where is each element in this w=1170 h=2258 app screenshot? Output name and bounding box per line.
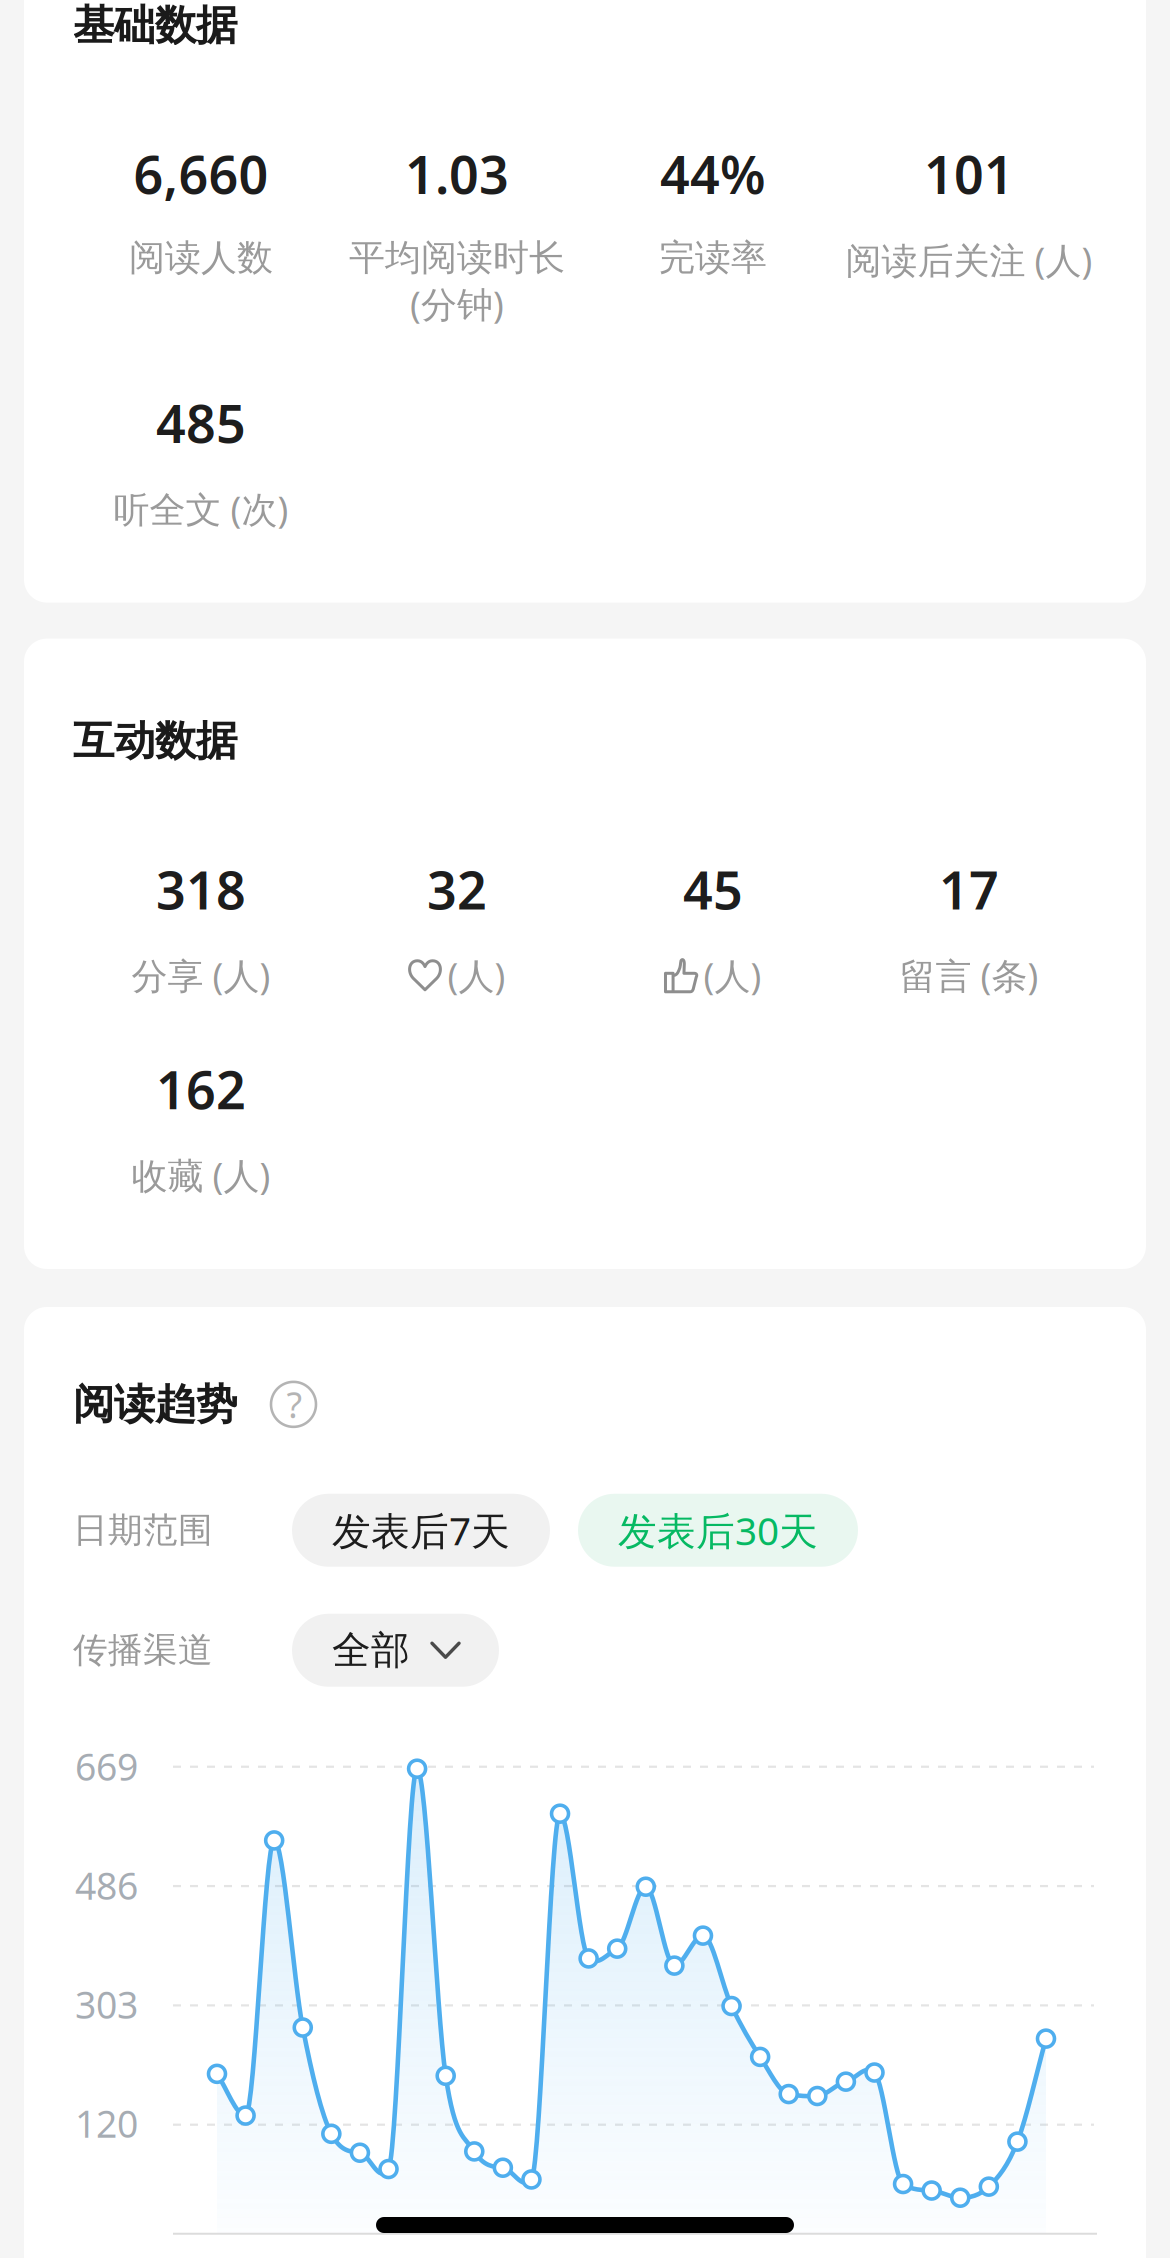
staticText: 120 [75,2098,138,2148]
staticText: 17 [939,855,999,924]
staticText: (人) [447,951,505,999]
staticText: ? [286,1380,302,1428]
staticText: 318 [156,855,246,924]
staticText: 收藏 (人) [131,1151,270,1199]
staticText: 101 [924,139,1014,208]
staticText: 分享 (人) [131,951,270,999]
staticText: 发表后7天 [332,1505,510,1556]
staticText: 1.03 [405,139,509,208]
staticText: 669 [75,1741,138,1791]
staticText: 全部 [332,1626,410,1674]
staticText: 传播渠道 [73,1629,213,1672]
staticText: 阅读人数 [129,236,273,280]
staticText: 互动数据 [73,716,237,766]
staticText: 303 [75,1979,138,2029]
button[interactable]: 关于阅读趋势 [271,1382,316,1427]
staticText: 486 [75,1860,138,1910]
staticText: 阅读趋势 [73,1379,237,1430]
staticText: 45 [683,855,743,924]
staticText: 485 [156,388,246,457]
button[interactable]: 全部 [292,1614,499,1687]
staticText: 完读率 [659,236,767,280]
button[interactable]: 发表后30天 [578,1494,858,1567]
staticText: 日期范围 [73,1509,213,1552]
staticText: 32 [427,855,487,924]
staticText: 听全文 (次) [113,485,288,533]
staticText: 发表后30天 [618,1505,818,1556]
staticText: 平均阅读时长 [349,236,565,280]
button[interactable]: 发表后7天 [292,1494,550,1567]
staticText: 阅读后关注 (人) [845,236,1092,284]
staticText: 162 [156,1055,246,1124]
staticText: 6,660 [133,139,268,208]
staticText: 留言 (条) [899,951,1038,999]
staticText: 44% [660,139,766,208]
staticText: (人) [703,951,761,999]
staticText: (分钟) [410,280,504,328]
staticText: 基础数据 [73,0,237,51]
